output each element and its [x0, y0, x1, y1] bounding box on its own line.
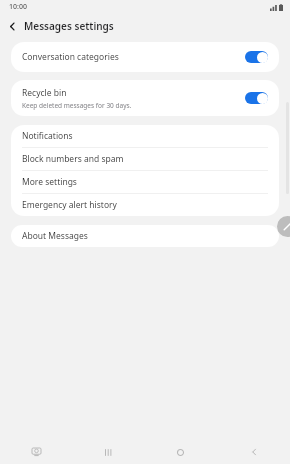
staticText: 10:00 — [9, 2, 27, 12]
button[interactable]: More settings — [11, 171, 279, 193]
button[interactable]: Toggle — [245, 92, 268, 104]
staticText: Notifications — [22, 130, 73, 142]
staticText: Conversation categories — [22, 51, 119, 63]
staticText: Recycle bin — [22, 87, 67, 99]
button[interactable]: Block numbers and spam — [11, 148, 279, 170]
staticText: Keep deleted messages for 30 days. — [22, 101, 132, 110]
button[interactable]: Recycle bin — [11, 80, 279, 116]
staticText: Emergency alert history — [22, 199, 117, 211]
button[interactable]: Toggle — [245, 51, 268, 63]
button[interactable]: About Messages — [11, 225, 279, 247]
button[interactable]: Recent apps — [72, 440, 144, 464]
button[interactable]: Home — [144, 440, 217, 464]
button[interactable]: Screenshot — [0, 440, 72, 464]
staticText: Block numbers and spam — [22, 153, 124, 165]
button[interactable]: Emergency alert history — [11, 194, 279, 216]
button[interactable]: Back — [0, 14, 24, 38]
button[interactable]: Notifications — [11, 125, 279, 147]
button[interactable]: Conversation categories — [11, 42, 279, 72]
staticText: More settings — [22, 176, 77, 188]
button[interactable]: Edit — [277, 216, 290, 237]
staticText: Messages settings — [24, 19, 114, 33]
staticText: About Messages — [22, 230, 88, 242]
